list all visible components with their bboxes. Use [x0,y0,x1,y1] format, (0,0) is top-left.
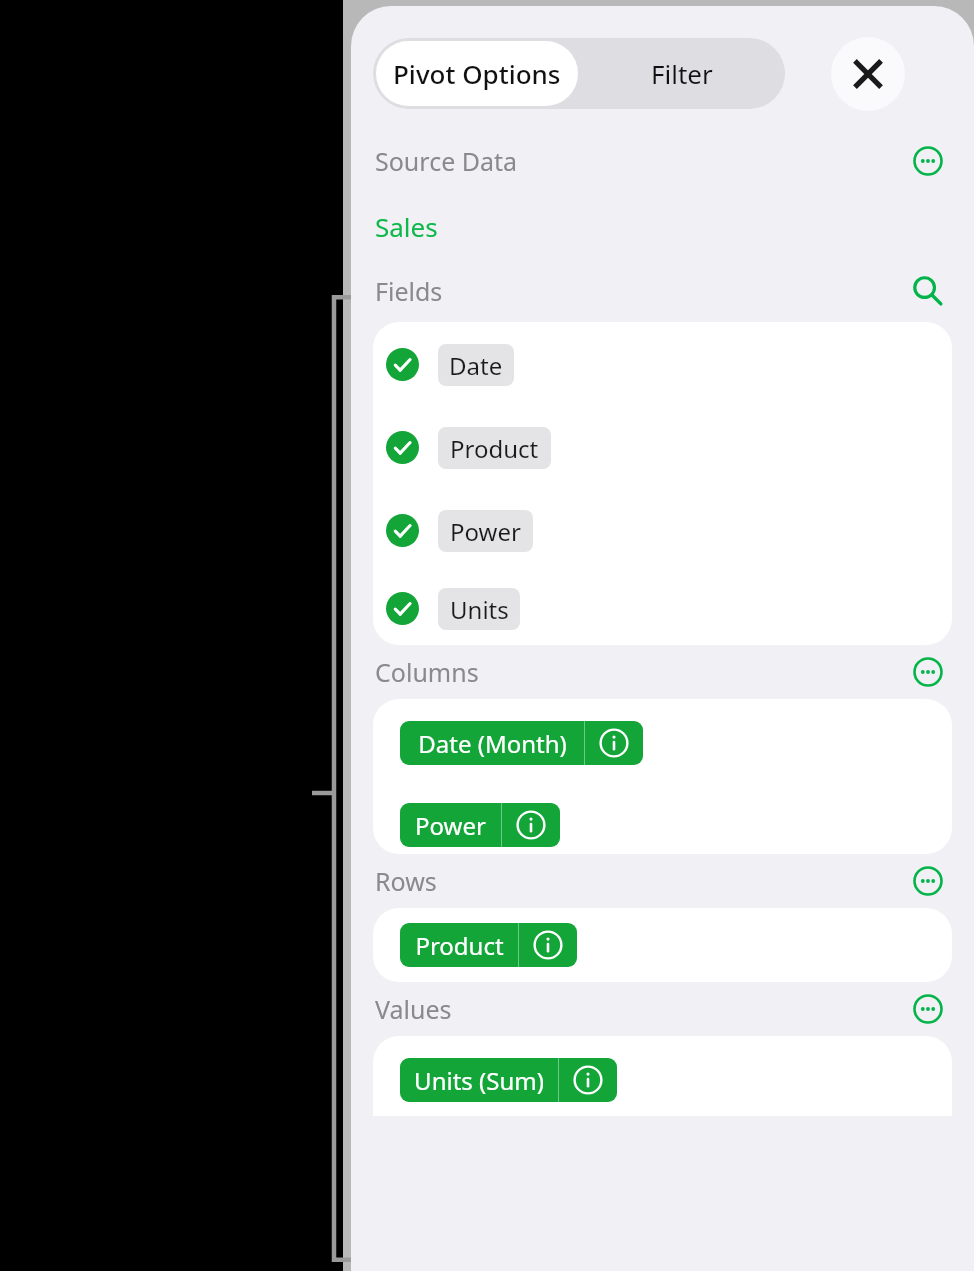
staticText: Fields [375,274,443,308]
staticText: Date [449,349,503,382]
button[interactable]: Close [831,37,905,111]
button[interactable]: Values options [908,989,948,1029]
staticText: Power [450,515,521,548]
button[interactable]: Date (Month) [400,721,643,765]
staticText: Pivot Options [393,56,561,91]
staticText: Power [415,809,486,842]
button[interactable]: Units (Sum) [400,1058,617,1102]
staticText: Product [450,432,539,465]
button[interactable]: Columns options [908,652,948,692]
button[interactable]: Product [400,923,577,967]
button[interactable]: Source data options [908,141,948,181]
button[interactable]: Filter [578,38,785,109]
button[interactable]: Pivot Options [376,41,578,106]
staticText: Sales [375,209,438,244]
staticText: Values [375,992,452,1026]
staticText: Product [415,929,504,962]
staticText: Source Data [375,144,518,178]
staticText: Date (Month) [418,727,567,760]
button[interactable]: Power [400,803,560,847]
button[interactable]: Rows options [908,861,948,901]
button[interactable]: Search fields [906,270,948,312]
button[interactable]: Sales [351,188,974,264]
button[interactable]: Power [373,489,952,572]
button[interactable]: Product [373,406,952,489]
staticText: Columns [375,655,479,689]
staticText: Units (Sum) [414,1064,544,1097]
button[interactable]: Units [373,572,952,645]
staticText: Units [450,593,509,626]
button[interactable]: Date [373,323,952,406]
staticText: Filter [651,56,713,91]
staticText: Rows [375,864,437,898]
